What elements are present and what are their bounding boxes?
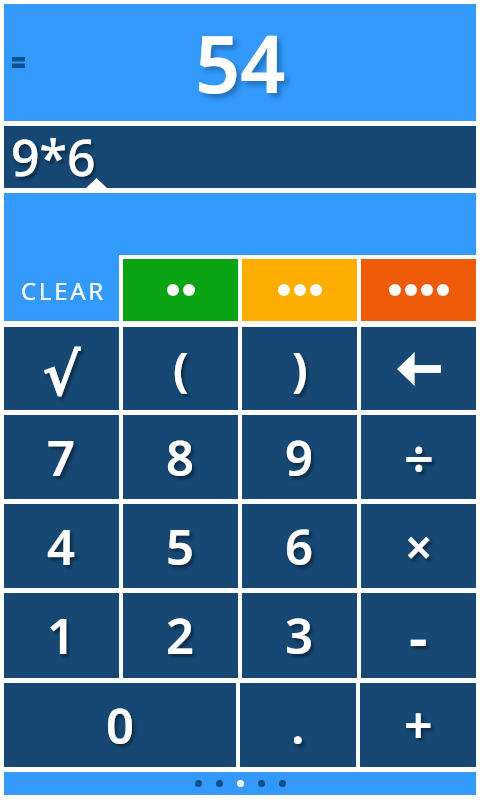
staticText: 5 <box>166 513 195 580</box>
staticText: 54 <box>195 9 286 117</box>
button[interactable]: - <box>361 593 476 678</box>
staticText: ) <box>292 337 308 400</box>
button[interactable]: Memory 4 <box>361 259 476 321</box>
button[interactable]: 5 <box>123 504 238 588</box>
button[interactable]: + <box>360 683 476 767</box>
staticText: ÷ <box>404 422 434 493</box>
button[interactable]: Memory 3 <box>242 259 357 321</box>
staticText: 4 <box>47 513 76 580</box>
staticText: 1 <box>47 602 76 669</box>
staticText: 6 <box>285 513 314 580</box>
staticText: 9*6 <box>11 123 96 185</box>
staticText: 8 <box>166 424 195 491</box>
staticText: 0 <box>106 692 135 759</box>
button[interactable]: ÷ <box>361 415 476 499</box>
staticText: ( <box>173 337 189 400</box>
button[interactable]: 1 <box>4 593 119 678</box>
button[interactable]: × <box>361 504 476 588</box>
staticText: . <box>291 692 305 759</box>
button[interactable]: Backspace <box>361 327 476 410</box>
staticText: √ <box>42 341 81 409</box>
button[interactable]: 7 <box>4 415 119 499</box>
button[interactable]: . <box>240 683 356 767</box>
button[interactable]: 4 <box>4 504 119 588</box>
button[interactable]: 6 <box>242 504 357 588</box>
staticText: + <box>404 691 433 759</box>
staticText: 3 <box>285 602 314 669</box>
button[interactable]: ( <box>123 327 238 410</box>
button[interactable]: 0 <box>4 683 236 767</box>
staticText: 9 <box>285 424 314 491</box>
button[interactable]: Memory 2 <box>123 259 238 321</box>
button[interactable]: 9 <box>242 415 357 499</box>
button[interactable]: Square root <box>4 327 119 410</box>
button[interactable]: ) <box>242 327 357 410</box>
button[interactable]: 2 <box>123 593 238 678</box>
staticText: × <box>405 514 433 579</box>
button[interactable]: 8 <box>123 415 238 499</box>
staticText: CLEAR <box>21 274 106 307</box>
staticText: 2 <box>166 602 195 669</box>
staticText: - <box>409 596 428 675</box>
button[interactable]: CLEAR <box>4 193 120 321</box>
staticText: 7 <box>47 424 76 491</box>
button[interactable]: 3 <box>242 593 357 678</box>
